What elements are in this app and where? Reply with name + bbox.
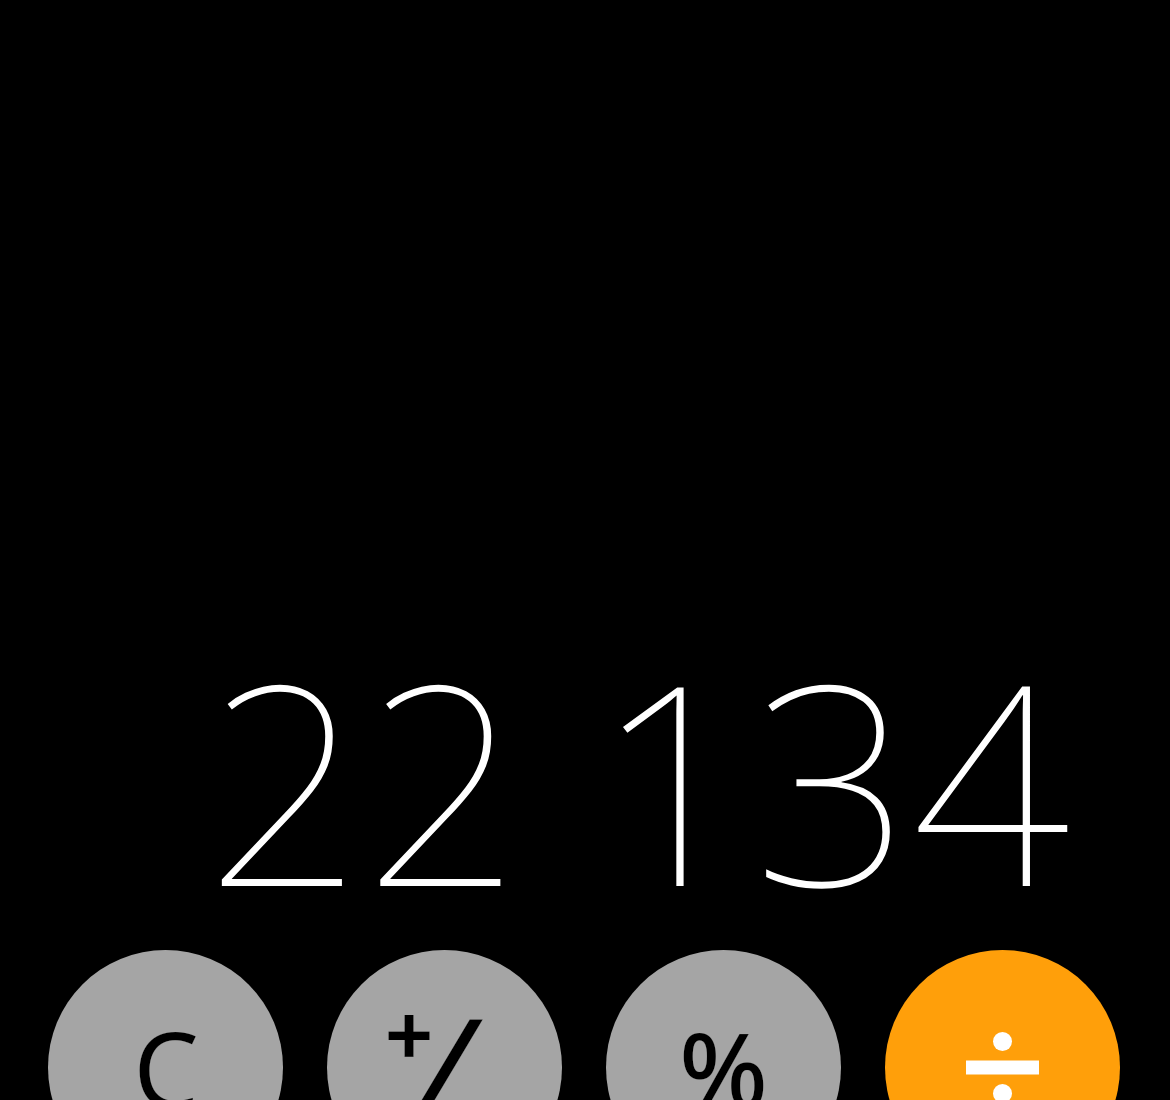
staticText: ⁺⁄₋	[383, 966, 506, 1100]
button[interactable]: Percent	[606, 950, 841, 1100]
button[interactable]: Toggle sign	[327, 950, 562, 1100]
staticText: C	[133, 997, 199, 1100]
staticText: 22 134	[205, 589, 1070, 968]
button[interactable]: Divide	[885, 950, 1120, 1100]
button[interactable]: Clear	[48, 950, 283, 1100]
staticText: %	[679, 997, 768, 1100]
